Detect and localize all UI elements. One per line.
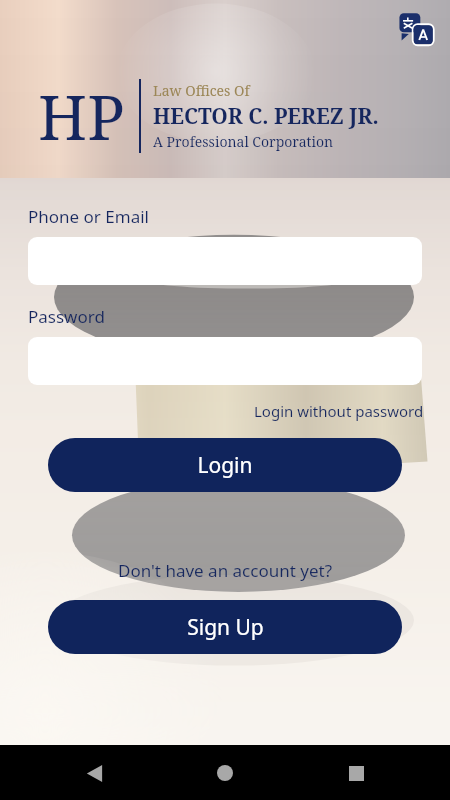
staticText: HECTOR C. PEREZ JR. [153,102,379,131]
staticText: Sign Up [187,613,264,642]
button[interactable]: Back [74,753,114,793]
staticText: A Professional Corporation [153,132,334,151]
staticText: Password [28,305,105,328]
button[interactable]: Recent apps [336,753,376,793]
button[interactable]: Home [205,753,245,793]
button[interactable]: Sign Up [48,600,402,654]
staticText: HP [38,74,125,158]
button[interactable]: Translate language [394,7,438,51]
button[interactable]: Login without password [254,399,450,423]
staticText: Law Offices Of [153,81,250,100]
staticText: Login [197,451,253,480]
button[interactable]: Login [48,438,402,492]
button[interactable]: Don't have an account yet? [114,555,337,586]
staticText: Phone or Email [28,205,149,228]
